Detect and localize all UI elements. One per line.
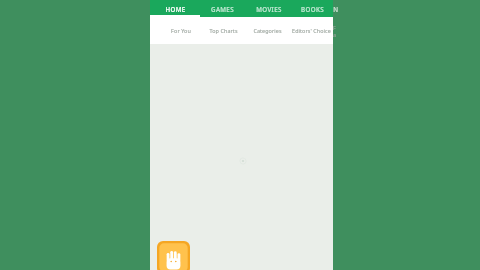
- button[interactable]: GAMES: [200, 0, 245, 17]
- staticText: Categories: [253, 27, 282, 34]
- button[interactable]: Editors' Choice: [289, 17, 333, 44]
- button[interactable]: BOOKS: [292, 0, 333, 17]
- button[interactable]: MOVIES: [245, 0, 292, 17]
- staticText: For You: [171, 27, 191, 34]
- staticText: BOOKS: [301, 5, 324, 13]
- button[interactable]: App icon: [157, 241, 190, 270]
- staticText: HOME: [165, 5, 186, 13]
- staticText: Top Charts: [209, 27, 238, 34]
- staticText: MOVIES: [256, 5, 282, 13]
- button[interactable]: Categories: [245, 17, 289, 44]
- button[interactable]: HOME: [150, 0, 200, 17]
- staticText: Editors' Choice: [292, 27, 331, 34]
- staticText: GAMES: [211, 5, 234, 13]
- button[interactable]: For You: [161, 17, 201, 44]
- button[interactable]: Top Charts: [201, 17, 245, 44]
